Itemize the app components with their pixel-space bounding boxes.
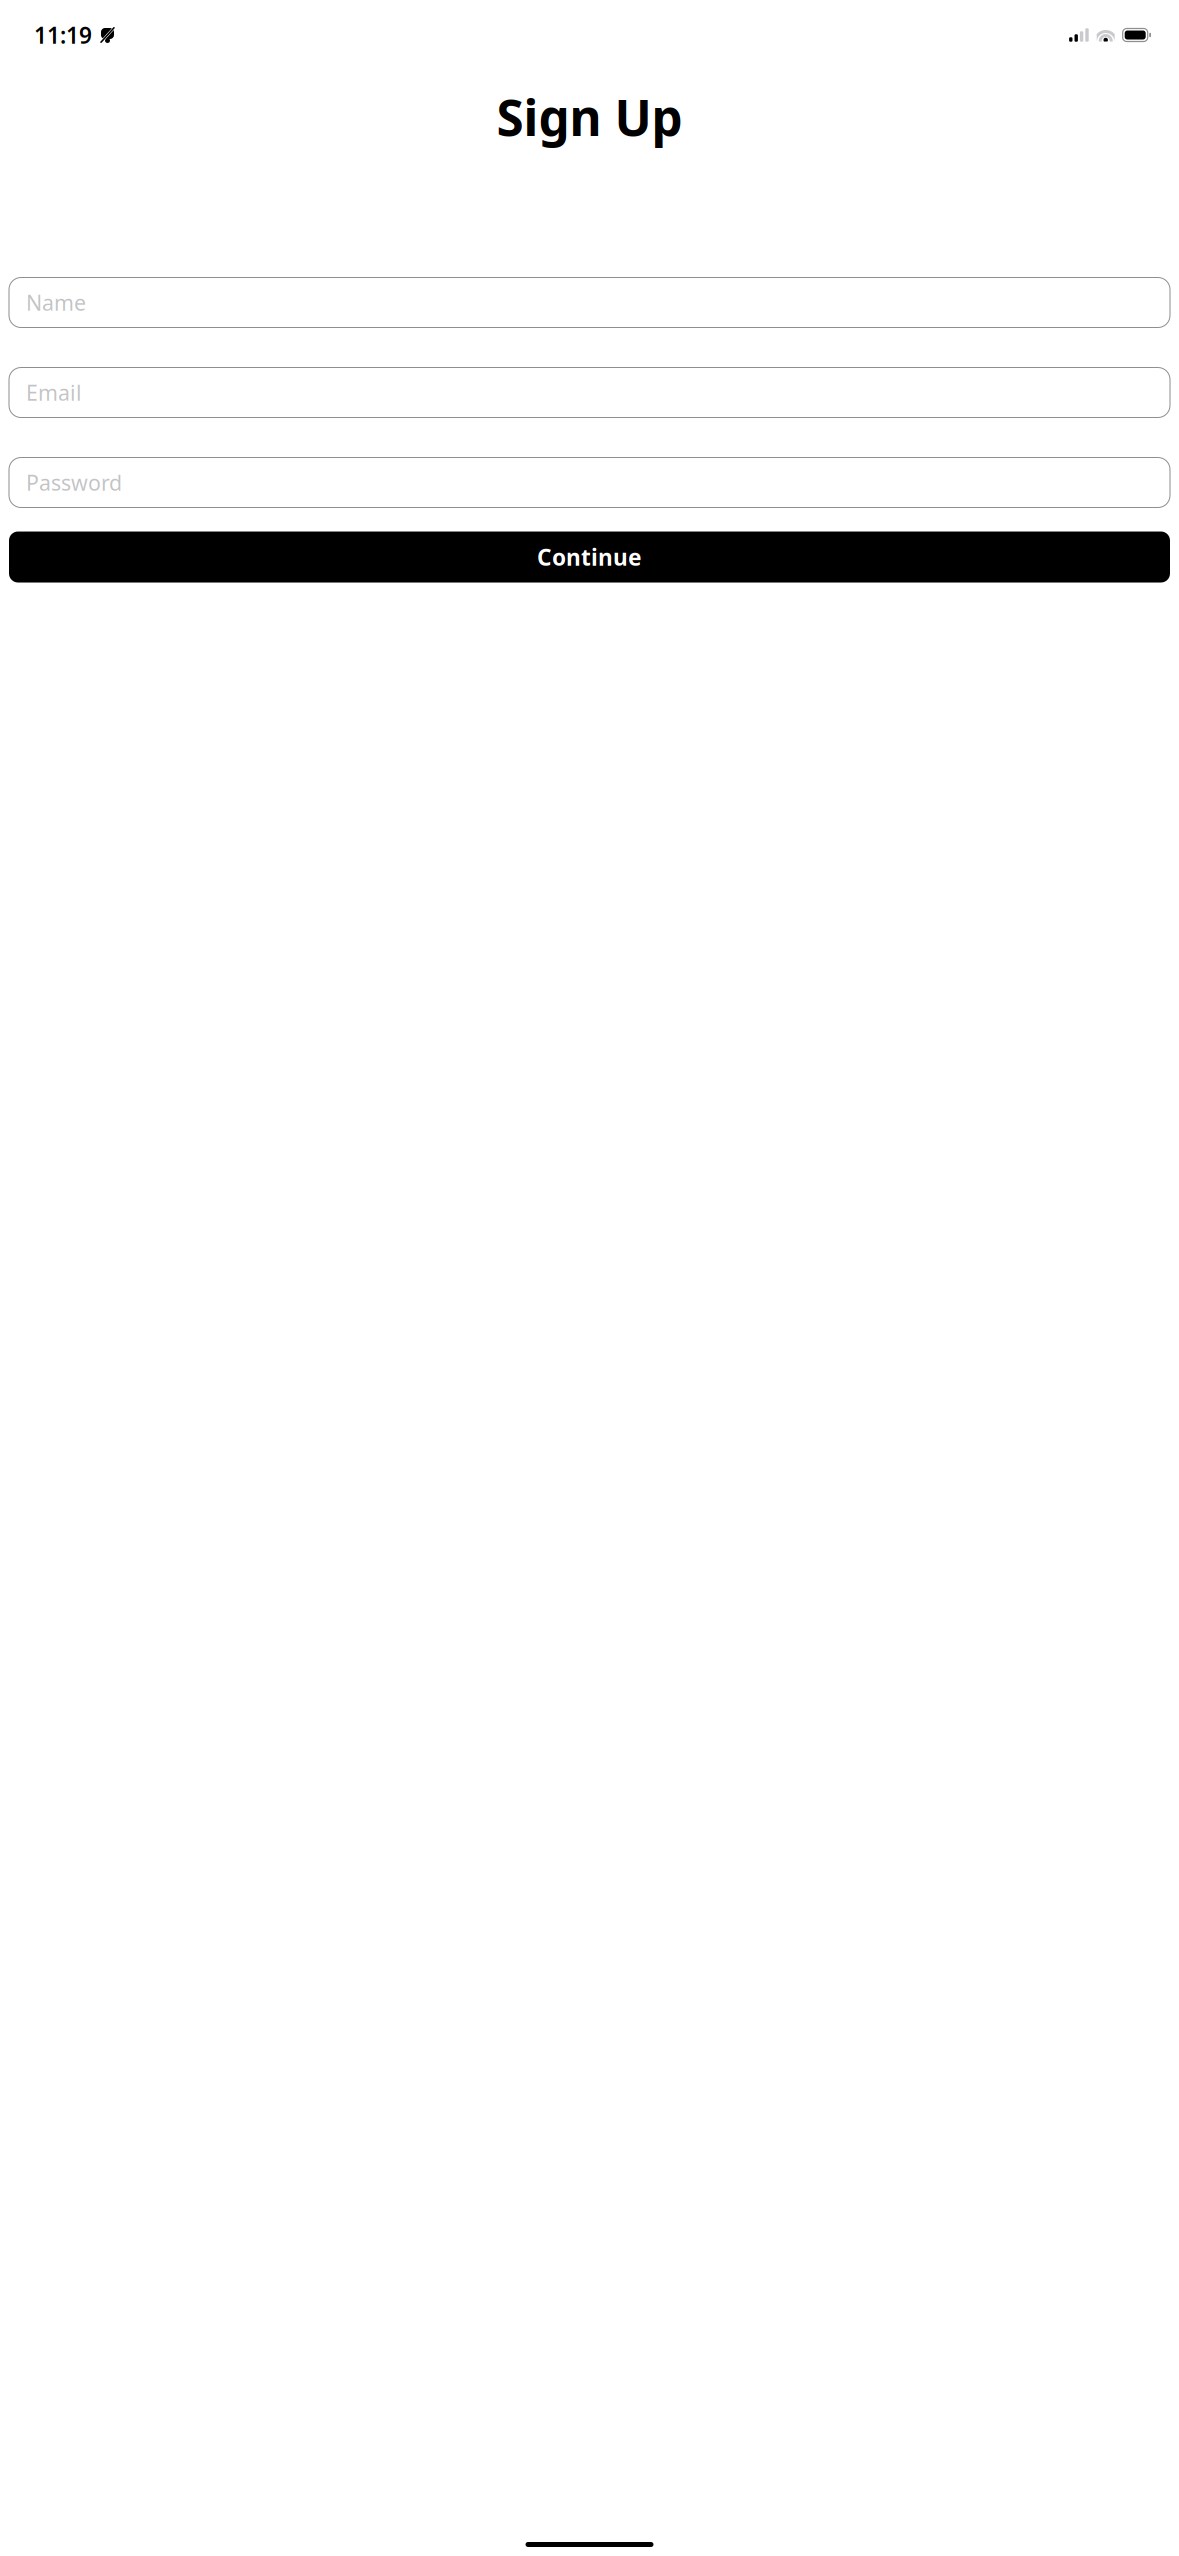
button[interactable]: Continue — [9, 531, 1170, 582]
staticText: Email — [26, 378, 82, 407]
staticText: Sign Up — [496, 84, 682, 149]
staticText: Continue — [537, 542, 642, 572]
staticText: Password — [26, 468, 122, 497]
staticText: 11:19 — [34, 20, 92, 50]
button[interactable]: Email — [9, 367, 1170, 417]
button[interactable]: Password — [9, 457, 1170, 507]
button[interactable]: Name — [9, 277, 1170, 327]
staticText: Name — [26, 288, 86, 317]
